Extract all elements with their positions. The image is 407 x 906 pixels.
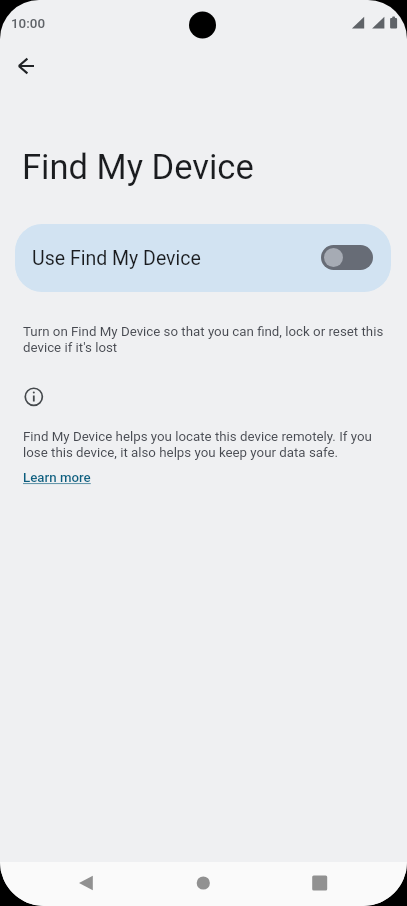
staticText: Turn on Find My Device so that you can f… [23, 324, 385, 356]
staticText: Learn more [23, 470, 91, 486]
staticText: Find My Device helps you locate this dev… [23, 429, 385, 461]
staticText: 10:00 [11, 16, 45, 32]
button[interactable]: Use Find My Device, off [321, 245, 373, 270]
staticText: Find My Device [22, 147, 254, 187]
button[interactable]: Back [0, 862, 135, 906]
staticText: Use Find My Device [32, 247, 201, 270]
button[interactable]: Home [135, 862, 270, 906]
button[interactable]: Use Find My Device [15, 224, 391, 292]
button[interactable]: Recent apps [270, 862, 407, 906]
button[interactable]: Learn more [23, 469, 91, 487]
button[interactable]: Navigate up [4, 44, 48, 88]
